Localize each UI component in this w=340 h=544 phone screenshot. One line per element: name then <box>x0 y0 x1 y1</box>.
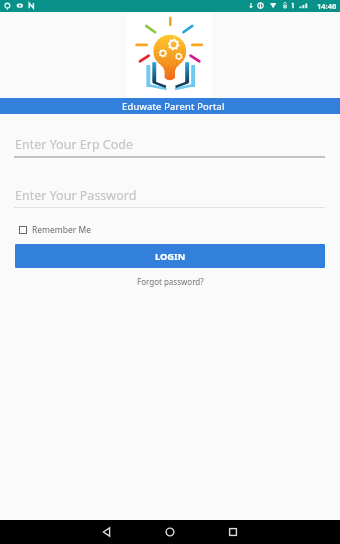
button[interactable]: Home <box>138 520 202 544</box>
staticText: Remember Me <box>32 224 92 236</box>
staticText: 14:46 <box>317 1 337 11</box>
staticText: Eduwate Parent Portal <box>122 100 225 113</box>
button[interactable]: LOGIN <box>15 244 325 268</box>
button[interactable]: Recents <box>201 520 265 544</box>
staticText: Enter Your Password <box>15 187 137 204</box>
button[interactable]: Remember Me <box>17 222 94 238</box>
button[interactable]: Forgot password? <box>135 274 206 289</box>
staticText: LOGIN <box>155 250 186 263</box>
staticText: Enter Your Erp Code <box>15 136 134 153</box>
button[interactable]: Back <box>75 520 139 544</box>
